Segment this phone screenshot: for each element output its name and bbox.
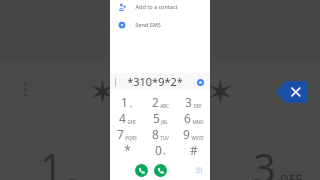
staticText: Add to a contact	[135, 3, 178, 10]
button[interactable]: Call with SIM 2	[154, 164, 167, 177]
staticText: JKL	[161, 119, 168, 125]
button[interactable]: 6	[177, 110, 210, 126]
staticText: ✶	[88, 72, 117, 112]
button[interactable]: More options	[24, 82, 27, 97]
staticText: 4	[119, 110, 126, 126]
button[interactable]: 4	[110, 110, 144, 126]
staticText: 7	[117, 126, 124, 142]
staticText: )	[196, 72, 206, 116]
staticText: _	[198, 86, 208, 116]
staticText: 1	[40, 140, 63, 180]
staticText: 9	[183, 126, 190, 142]
button[interactable]: Dialpad options	[193, 75, 207, 89]
staticText: ABC	[160, 103, 169, 109]
staticText: #	[190, 142, 198, 158]
button[interactable]: 3	[177, 94, 210, 110]
button[interactable]: 8	[144, 126, 177, 142]
staticText: WXYZ	[191, 135, 204, 141]
button[interactable]: 1	[40, 140, 77, 180]
staticText: DEF	[280, 171, 302, 180]
button[interactable]: 2	[144, 94, 177, 110]
staticText: 6	[184, 110, 191, 126]
button[interactable]: Call with SIM 1	[135, 164, 148, 177]
staticText: 8	[152, 126, 159, 142]
staticText: GHI	[127, 119, 136, 125]
button[interactable]: 1	[110, 94, 144, 110]
staticText: PQRS	[125, 135, 137, 141]
staticText: MNO	[192, 119, 204, 125]
staticText: Send SMS	[135, 21, 161, 28]
button[interactable]: *	[110, 142, 144, 158]
button[interactable]: Add to a contact	[110, 0, 210, 13]
button[interactable]: *310*9*2*	[110, 73, 210, 90]
button[interactable]: Backspace	[276, 81, 308, 103]
staticText: 3	[185, 94, 192, 110]
staticText: 0	[155, 142, 162, 158]
staticText: ✶	[206, 72, 235, 112]
button[interactable]: 0	[144, 142, 177, 158]
staticText: 3	[253, 140, 276, 180]
staticText: *310*9*2*	[127, 74, 183, 89]
button[interactable]: 3	[253, 140, 302, 180]
staticText: ∞	[129, 104, 133, 109]
button[interactable]: #	[177, 142, 210, 158]
button[interactable]: 7	[110, 126, 144, 142]
staticText: 1	[121, 94, 128, 110]
button[interactable]: 5	[144, 110, 177, 126]
staticText: DEF	[193, 103, 202, 109]
staticText: 2	[152, 94, 159, 110]
button[interactable]: 9	[177, 126, 210, 142]
staticText: *	[124, 142, 131, 158]
staticText: 5	[153, 110, 160, 126]
button[interactable]: Hide dialpad	[192, 163, 206, 177]
staticText: TUV	[160, 135, 169, 141]
button[interactable]: Send SMS	[110, 18, 210, 31]
staticText: +	[163, 151, 166, 157]
staticText: ∞	[67, 173, 77, 180]
